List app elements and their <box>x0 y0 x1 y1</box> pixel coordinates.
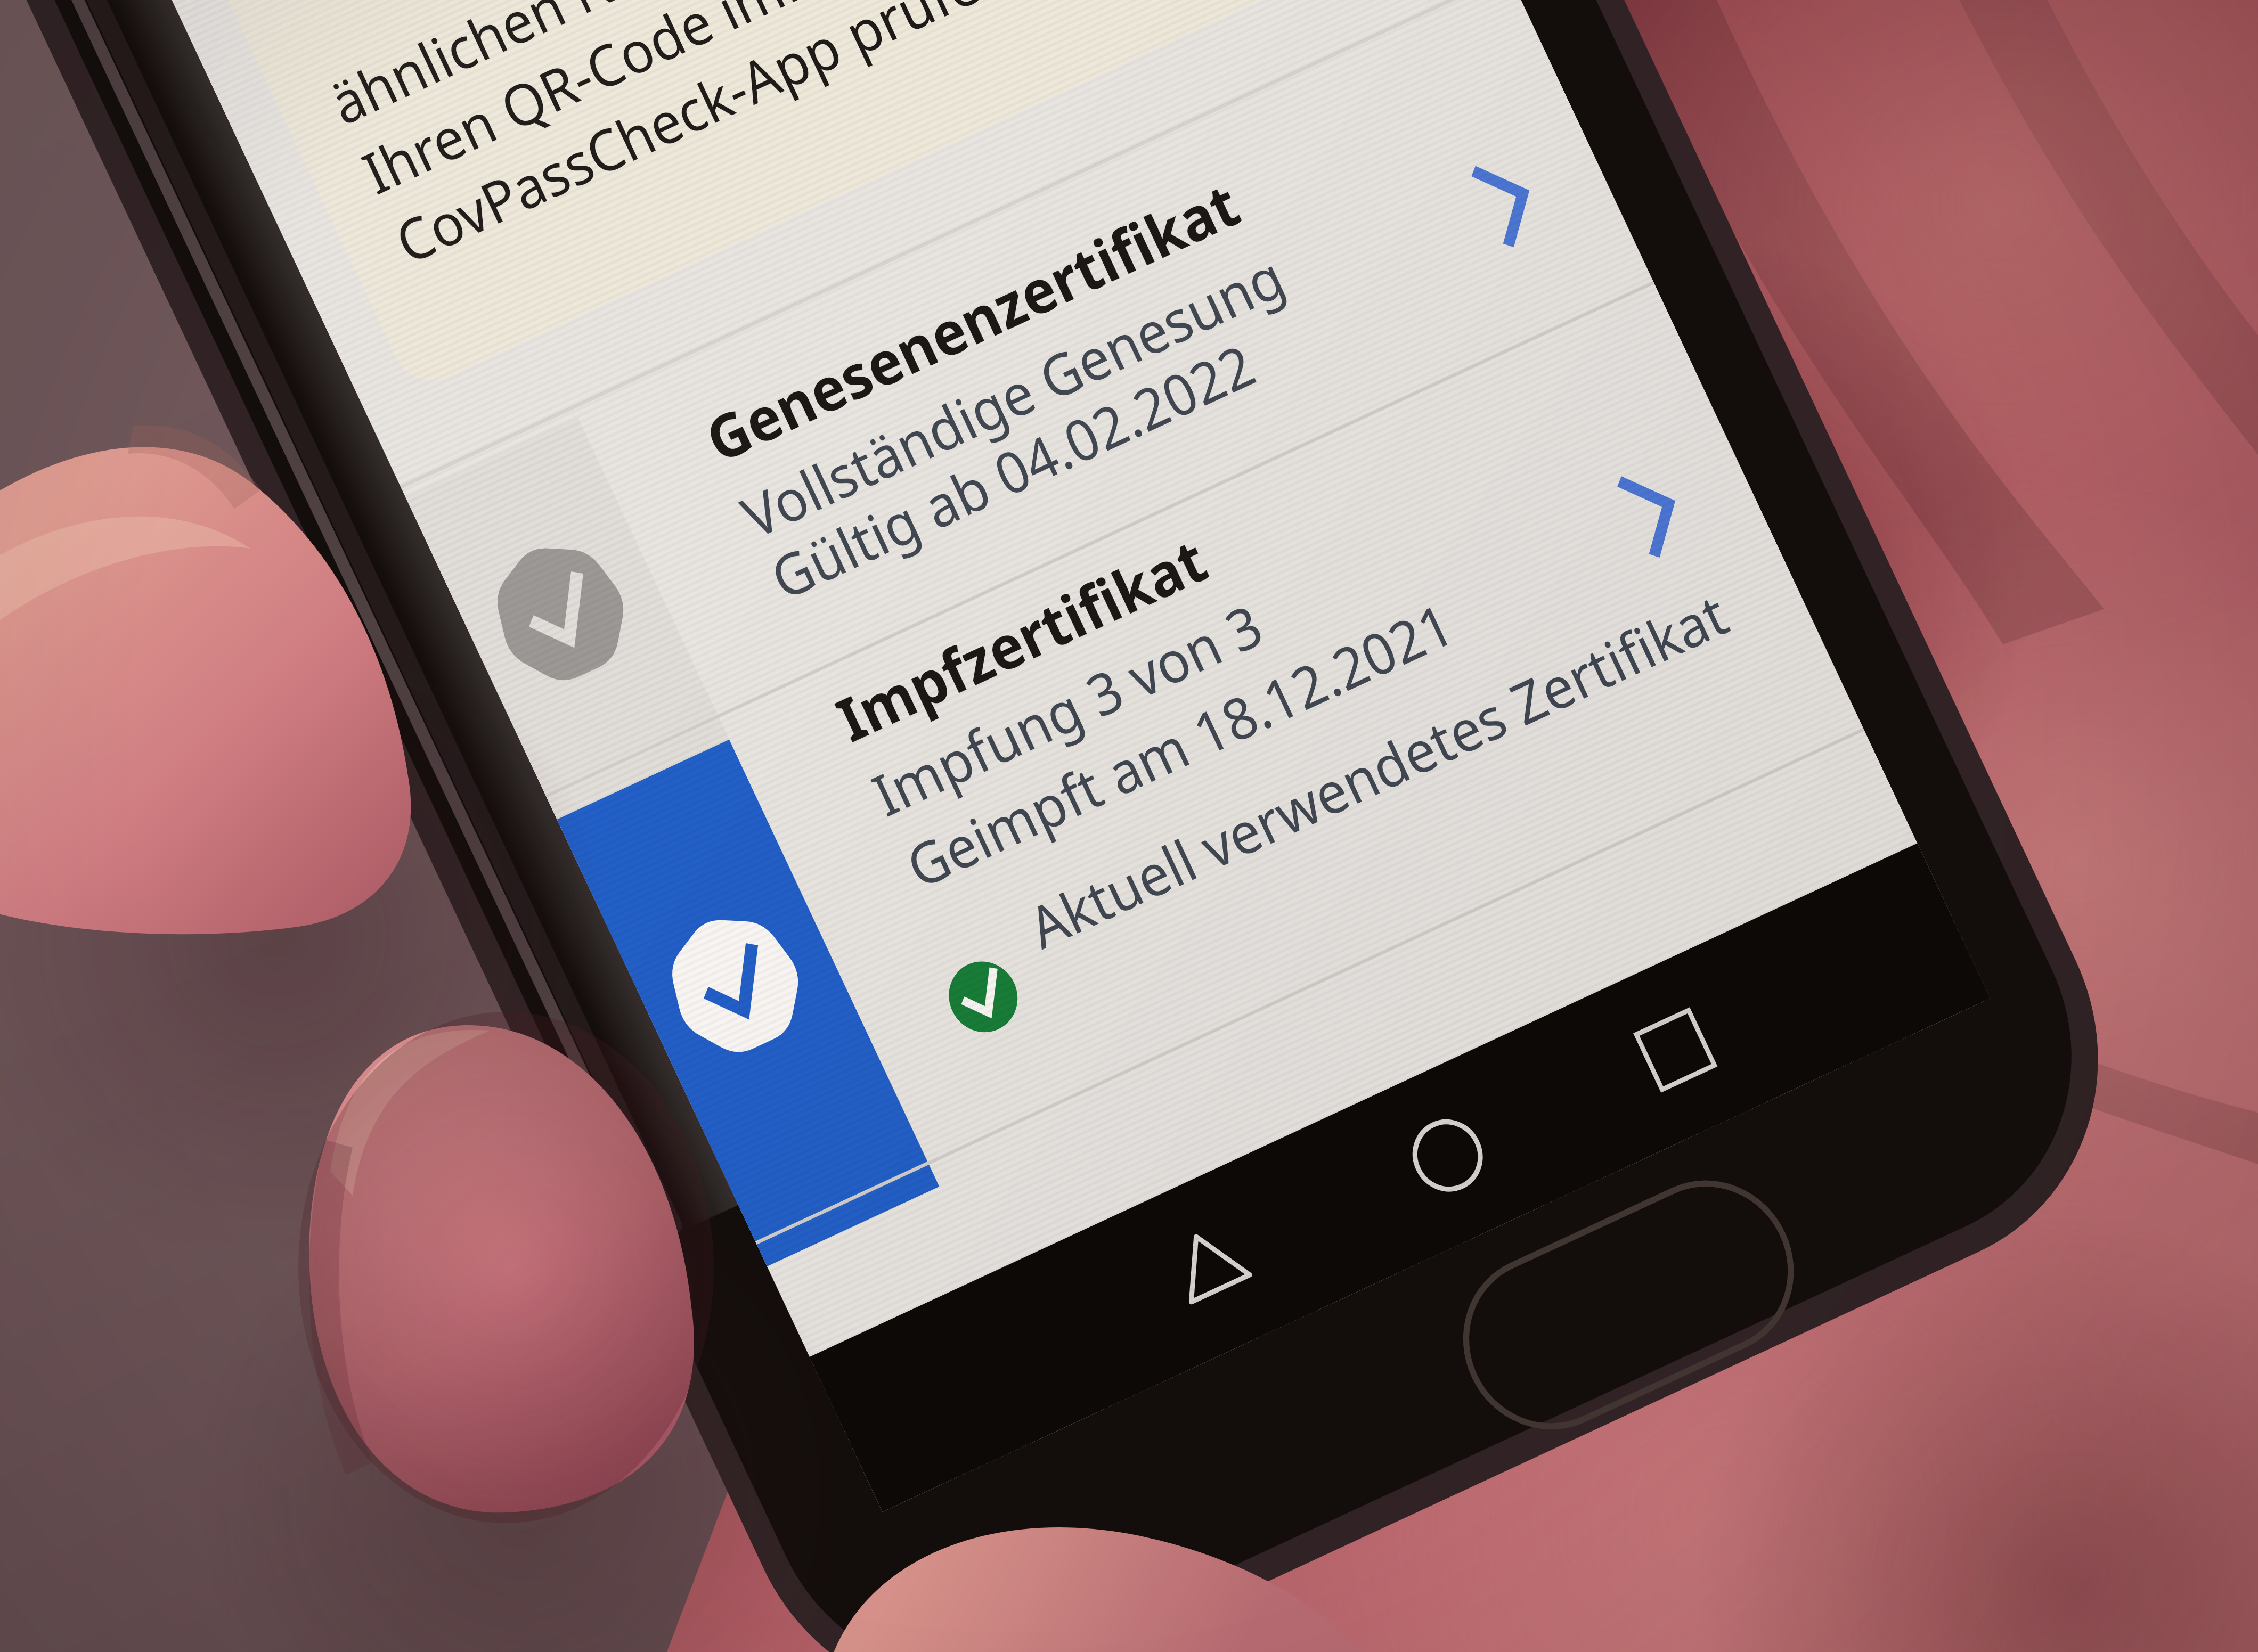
button[interactable]: CovPass Zertifikate Liste <box>0 0 2258 1652</box>
